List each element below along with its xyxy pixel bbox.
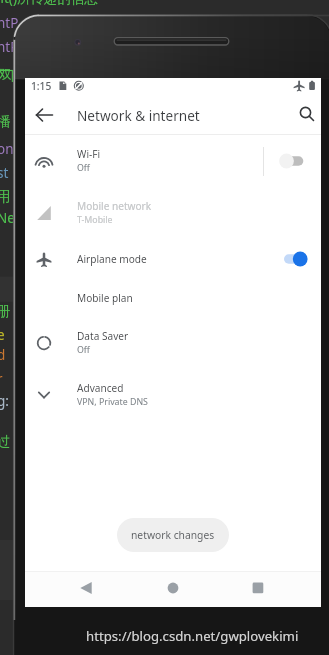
button[interactable]: Advanced xyxy=(25,369,321,421)
staticText: g: xyxy=(0,392,9,410)
button[interactable]: Wi-Fi xyxy=(25,135,321,187)
staticText: 1:15 xyxy=(31,79,52,93)
staticText: VPN, Private DNS xyxy=(77,396,148,408)
staticText: 册 xyxy=(0,303,11,320)
staticText: network changes xyxy=(131,528,215,542)
button[interactable]: Data Saver xyxy=(25,317,321,369)
staticText: r xyxy=(0,370,3,388)
staticText: 播 xyxy=(0,113,11,130)
staticText: Off xyxy=(77,344,90,356)
staticText: Airplane mode xyxy=(77,252,147,266)
staticText: 过 xyxy=(0,433,11,450)
button[interactable]: Wi-Fi switch xyxy=(279,150,313,172)
staticText: Ne xyxy=(0,209,15,227)
button[interactable]: Mobile network xyxy=(25,187,321,239)
staticText: ent()所传递的信息 xyxy=(0,0,98,7)
staticText: 用 xyxy=(0,188,11,205)
button[interactable]: Airplane mode xyxy=(25,239,321,278)
button[interactable]: Mobile plan xyxy=(25,278,321,317)
staticText: d xyxy=(0,346,6,364)
button[interactable]: Home xyxy=(159,574,187,602)
button[interactable]: Airplane mode switch xyxy=(279,248,313,270)
staticText: Advanced xyxy=(77,381,124,395)
button[interactable]: Navigate up xyxy=(33,101,59,127)
staticText: e xyxy=(0,326,5,344)
button[interactable]: network changes xyxy=(117,518,229,552)
staticText: ntP xyxy=(0,38,19,56)
button[interactable]: Search xyxy=(294,101,320,127)
staticText: Mobile plan xyxy=(77,291,133,305)
staticText: ntP xyxy=(0,14,19,32)
staticText: 双 xyxy=(0,67,12,83)
staticText: Wi-Fi xyxy=(77,147,101,161)
staticText: T-Mobile xyxy=(77,214,113,226)
button[interactable]: Back xyxy=(72,574,100,602)
staticText: on xyxy=(0,140,14,158)
staticText: Off xyxy=(77,162,90,174)
staticText: st xyxy=(0,164,9,182)
staticText: Mobile network xyxy=(77,199,152,213)
staticText: Network & internet xyxy=(77,106,200,125)
staticText: Data Saver xyxy=(77,329,129,343)
staticText: https://blog.csdn.net/gwplovekimi xyxy=(86,627,299,645)
button[interactable]: Recent apps xyxy=(244,574,272,602)
